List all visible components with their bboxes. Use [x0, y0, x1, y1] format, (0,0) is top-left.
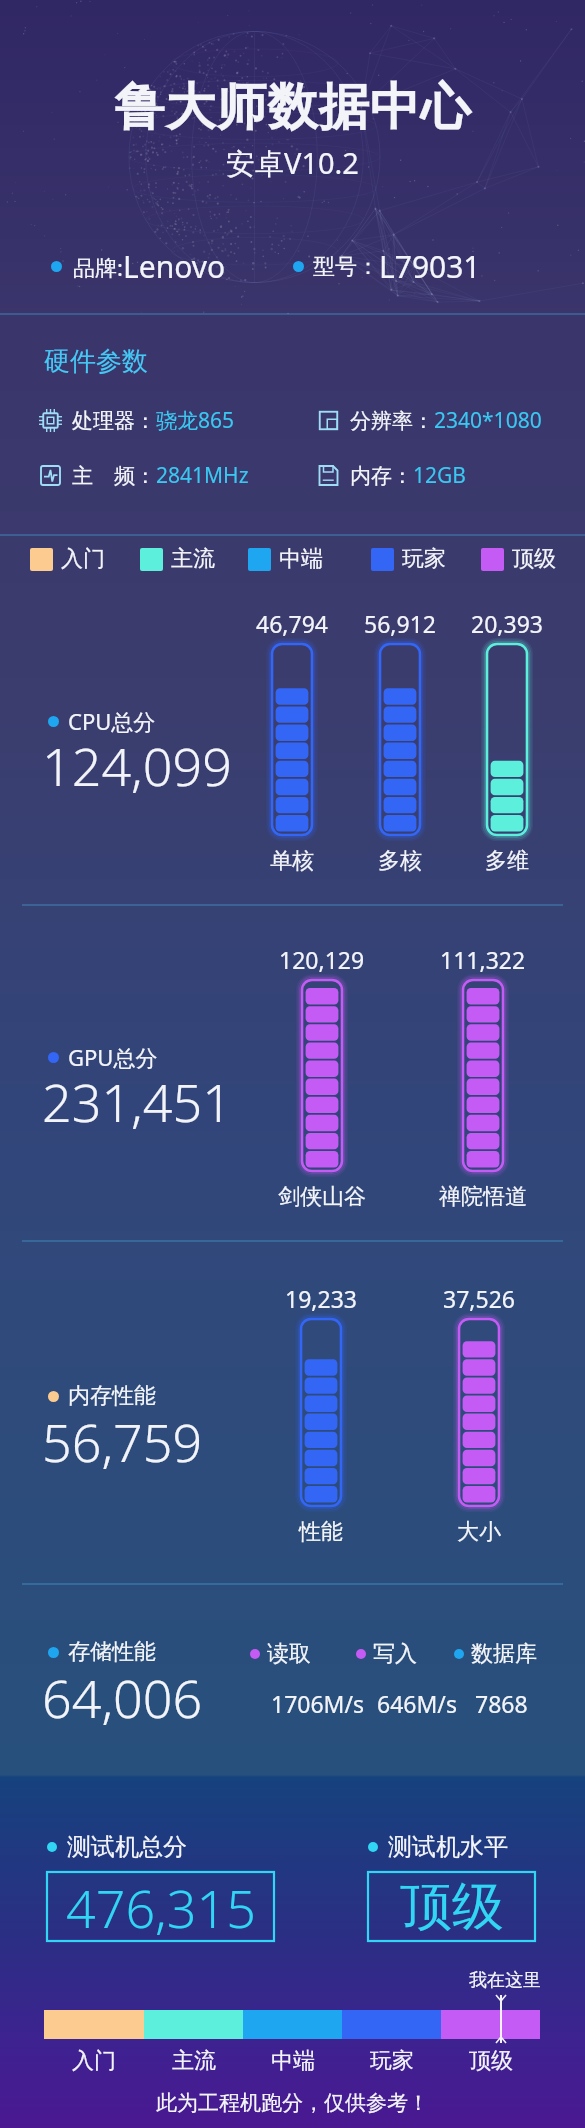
button[interactable]: 入门: [30, 545, 105, 573]
staticText: 2841MHz: [156, 461, 249, 490]
staticText: CPU总分: [68, 706, 156, 736]
staticText: 品牌:: [73, 252, 123, 282]
button[interactable]: 玩家: [371, 545, 446, 573]
staticText: 231,451: [42, 1066, 232, 1137]
staticText: 数据库: [471, 1640, 537, 1668]
staticText: 存储性能: [68, 1638, 156, 1666]
staticText: 56,759: [42, 1406, 203, 1477]
staticText: 中端: [279, 545, 323, 573]
staticText: 禅院悟道: [439, 1183, 527, 1211]
staticText: 顶级: [400, 1874, 504, 1940]
staticText: 120,129: [279, 944, 365, 975]
staticText: 7868: [475, 1688, 528, 1719]
staticText: 我在这里: [469, 1969, 541, 1992]
staticText: 入门: [61, 545, 105, 573]
staticText: 124,099: [42, 730, 232, 801]
staticText: 安卓V10.2: [226, 143, 359, 183]
button[interactable]: 主流: [140, 545, 215, 573]
staticText: 20,393: [471, 608, 543, 639]
staticText: 分辨率：: [350, 408, 434, 434]
staticText: 鲁大师数据中心: [114, 76, 471, 139]
staticText: 主 频：: [72, 461, 156, 490]
staticText: 读取: [267, 1640, 311, 1668]
staticText: 56,912: [364, 608, 436, 639]
staticText: 46,794: [256, 608, 328, 639]
staticText: 2340*1080: [434, 406, 542, 435]
staticText: 入门: [72, 2047, 116, 2075]
staticText: 多维: [485, 847, 529, 875]
staticText: 骁龙865: [156, 406, 235, 435]
button[interactable]: 476,315: [47, 1872, 274, 1941]
staticText: 剑侠山谷: [278, 1183, 366, 1211]
staticText: 476,315: [66, 1872, 256, 1941]
staticText: 玩家: [402, 545, 446, 573]
staticText: 多核: [378, 847, 422, 875]
staticText: 玩家: [370, 2047, 414, 2075]
staticText: Lenovo: [123, 246, 226, 287]
staticText: 性能: [299, 1518, 343, 1546]
button[interactable]: 顶级: [368, 1872, 535, 1941]
staticText: 中端: [271, 2047, 315, 2075]
staticText: 测试机水平: [388, 1832, 508, 1862]
button[interactable]: 中端: [248, 545, 323, 573]
staticText: 大小: [457, 1518, 501, 1546]
staticText: 19,233: [285, 1283, 357, 1314]
staticText: 顶级: [512, 545, 556, 573]
staticText: 写入: [373, 1640, 417, 1668]
staticText: 顶级: [469, 2047, 513, 2075]
staticText: 646M/s: [377, 1688, 457, 1719]
button[interactable]: 顶级: [481, 545, 556, 573]
staticText: 内存：: [350, 463, 413, 489]
staticText: 37,526: [443, 1283, 515, 1314]
staticText: 测试机总分: [67, 1832, 187, 1862]
staticText: 内存性能: [68, 1382, 156, 1410]
staticText: 12GB: [413, 461, 466, 490]
staticText: 64,006: [42, 1662, 203, 1733]
staticText: GPU总分: [68, 1042, 158, 1072]
staticText: L79031: [379, 246, 481, 287]
staticText: 主流: [172, 2047, 216, 2075]
staticText: 单核: [270, 847, 314, 875]
staticText: 硬件参数: [44, 345, 148, 378]
staticText: 处理器：: [72, 408, 156, 434]
staticText: 111,322: [440, 944, 526, 975]
staticText: 此为工程机跑分，仅供参考！: [156, 2090, 429, 2116]
staticText: 1706M/s: [271, 1688, 365, 1719]
staticText: 型号：: [313, 253, 379, 281]
staticText: 主流: [171, 545, 215, 573]
